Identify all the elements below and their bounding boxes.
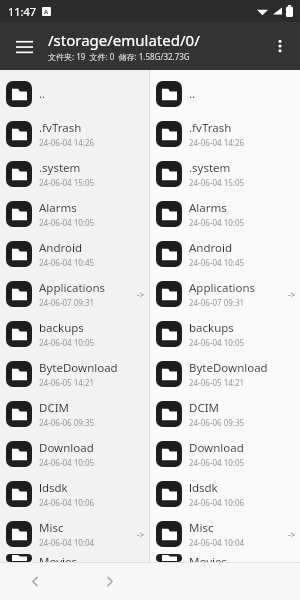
staticText: .fvTrash (39, 120, 82, 136)
button[interactable]: ldsdk (0, 474, 149, 514)
button[interactable]: ldsdk (150, 474, 300, 514)
staticText: 24-06-04 10:05 (189, 337, 245, 348)
button[interactable]: More options (264, 30, 296, 62)
staticText: 24-06-04 10:06 (189, 497, 245, 508)
button[interactable]: DCIM (150, 394, 300, 434)
button[interactable]: Download (0, 434, 149, 474)
staticText: 24-06-04 10:04 (39, 537, 95, 548)
staticText: Movies (39, 554, 77, 562)
staticText: -> (288, 289, 296, 300)
staticText: 11:47 (8, 4, 37, 19)
staticText: 24-06-04 10:05 (39, 217, 95, 228)
staticText: Alarms (189, 200, 227, 216)
button[interactable]: Download (150, 434, 300, 474)
staticText: Android (39, 240, 83, 256)
staticText: 24-06-04 10:05 (189, 217, 245, 228)
staticText: 24-06-04 10:05 (189, 457, 245, 468)
staticText: .system (39, 160, 81, 176)
button[interactable]: Misc (150, 514, 300, 554)
staticText: ByteDownload (39, 360, 118, 376)
staticText: A (44, 8, 49, 16)
staticText: -> (137, 289, 145, 300)
button[interactable]: Android (150, 234, 300, 274)
button[interactable]: Misc (0, 514, 149, 554)
button[interactable]: Android (0, 234, 149, 274)
staticText: 24-06-04 10:06 (39, 497, 95, 508)
staticText: ldsdk (189, 480, 218, 496)
button[interactable]: Menu (8, 30, 40, 62)
button[interactable]: .system (150, 154, 300, 194)
staticText: Misc (189, 520, 214, 536)
staticText: Applications (189, 280, 256, 296)
button[interactable]: backups (0, 314, 149, 354)
staticText: .system (189, 160, 231, 176)
staticText: -> (137, 529, 145, 540)
staticText: 24-06-06 09:35 (39, 417, 95, 428)
staticText: 24-06-07 09:31 (189, 297, 245, 308)
staticText: 24-06-07 09:31 (39, 297, 95, 308)
button[interactable]: Movies (0, 554, 149, 562)
staticText: backups (189, 320, 234, 336)
staticText: 24-06-04 14:26 (39, 137, 95, 148)
button[interactable]: .fvTrash (150, 114, 300, 154)
staticText: Download (189, 440, 244, 456)
staticText: backups (39, 320, 84, 336)
staticText: 24-06-04 10:05 (39, 337, 95, 348)
staticText: Alarms (39, 200, 77, 216)
button[interactable]: Movies (150, 554, 300, 562)
staticText: 24-06-04 15:05 (189, 177, 245, 188)
staticText: Movies (189, 554, 227, 562)
staticText: Download (39, 440, 94, 456)
staticText: 24-06-04 14:26 (189, 137, 245, 148)
button[interactable]: .fvTrash (0, 114, 149, 154)
staticText: .fvTrash (189, 120, 232, 136)
staticText: 24-06-05 14:21 (39, 377, 95, 388)
staticText: /storage/emulated/0/ (48, 30, 200, 50)
button[interactable]: .. (0, 74, 149, 114)
staticText: .. (39, 86, 46, 102)
staticText: .. (189, 86, 196, 102)
button[interactable]: ByteDownload (150, 354, 300, 394)
staticText: Android (189, 240, 233, 256)
staticText: 24-06-04 10:04 (189, 537, 245, 548)
button[interactable]: Back (18, 564, 52, 598)
button[interactable]: ByteDownload (0, 354, 149, 394)
staticText: -> (288, 529, 296, 540)
button[interactable]: backups (150, 314, 300, 354)
staticText: DCIM (39, 400, 69, 416)
staticText: ByteDownload (189, 360, 268, 376)
staticText: 24-06-04 10:45 (189, 257, 245, 268)
staticText: 文件夹: 19 文件: 0 储存: 1.58G/32.73G (48, 51, 190, 62)
button[interactable]: .system (0, 154, 149, 194)
staticText: 24-06-04 15:05 (39, 177, 95, 188)
staticText: 24-06-06 09:35 (189, 417, 245, 428)
button[interactable]: Forward (92, 564, 126, 598)
button[interactable]: Applications (0, 274, 149, 314)
staticText: DCIM (189, 400, 219, 416)
staticText: ldsdk (39, 480, 68, 496)
staticText: 24-06-05 14:21 (189, 377, 245, 388)
button[interactable]: Alarms (0, 194, 149, 234)
staticText: Applications (39, 280, 106, 296)
button[interactable]: .. (150, 74, 300, 114)
button[interactable]: Alarms (150, 194, 300, 234)
button[interactable]: DCIM (0, 394, 149, 434)
button[interactable]: Applications (150, 274, 300, 314)
staticText: Misc (39, 520, 64, 536)
staticText: 24-06-04 10:05 (39, 457, 95, 468)
staticText: 24-06-04 10:45 (39, 257, 95, 268)
